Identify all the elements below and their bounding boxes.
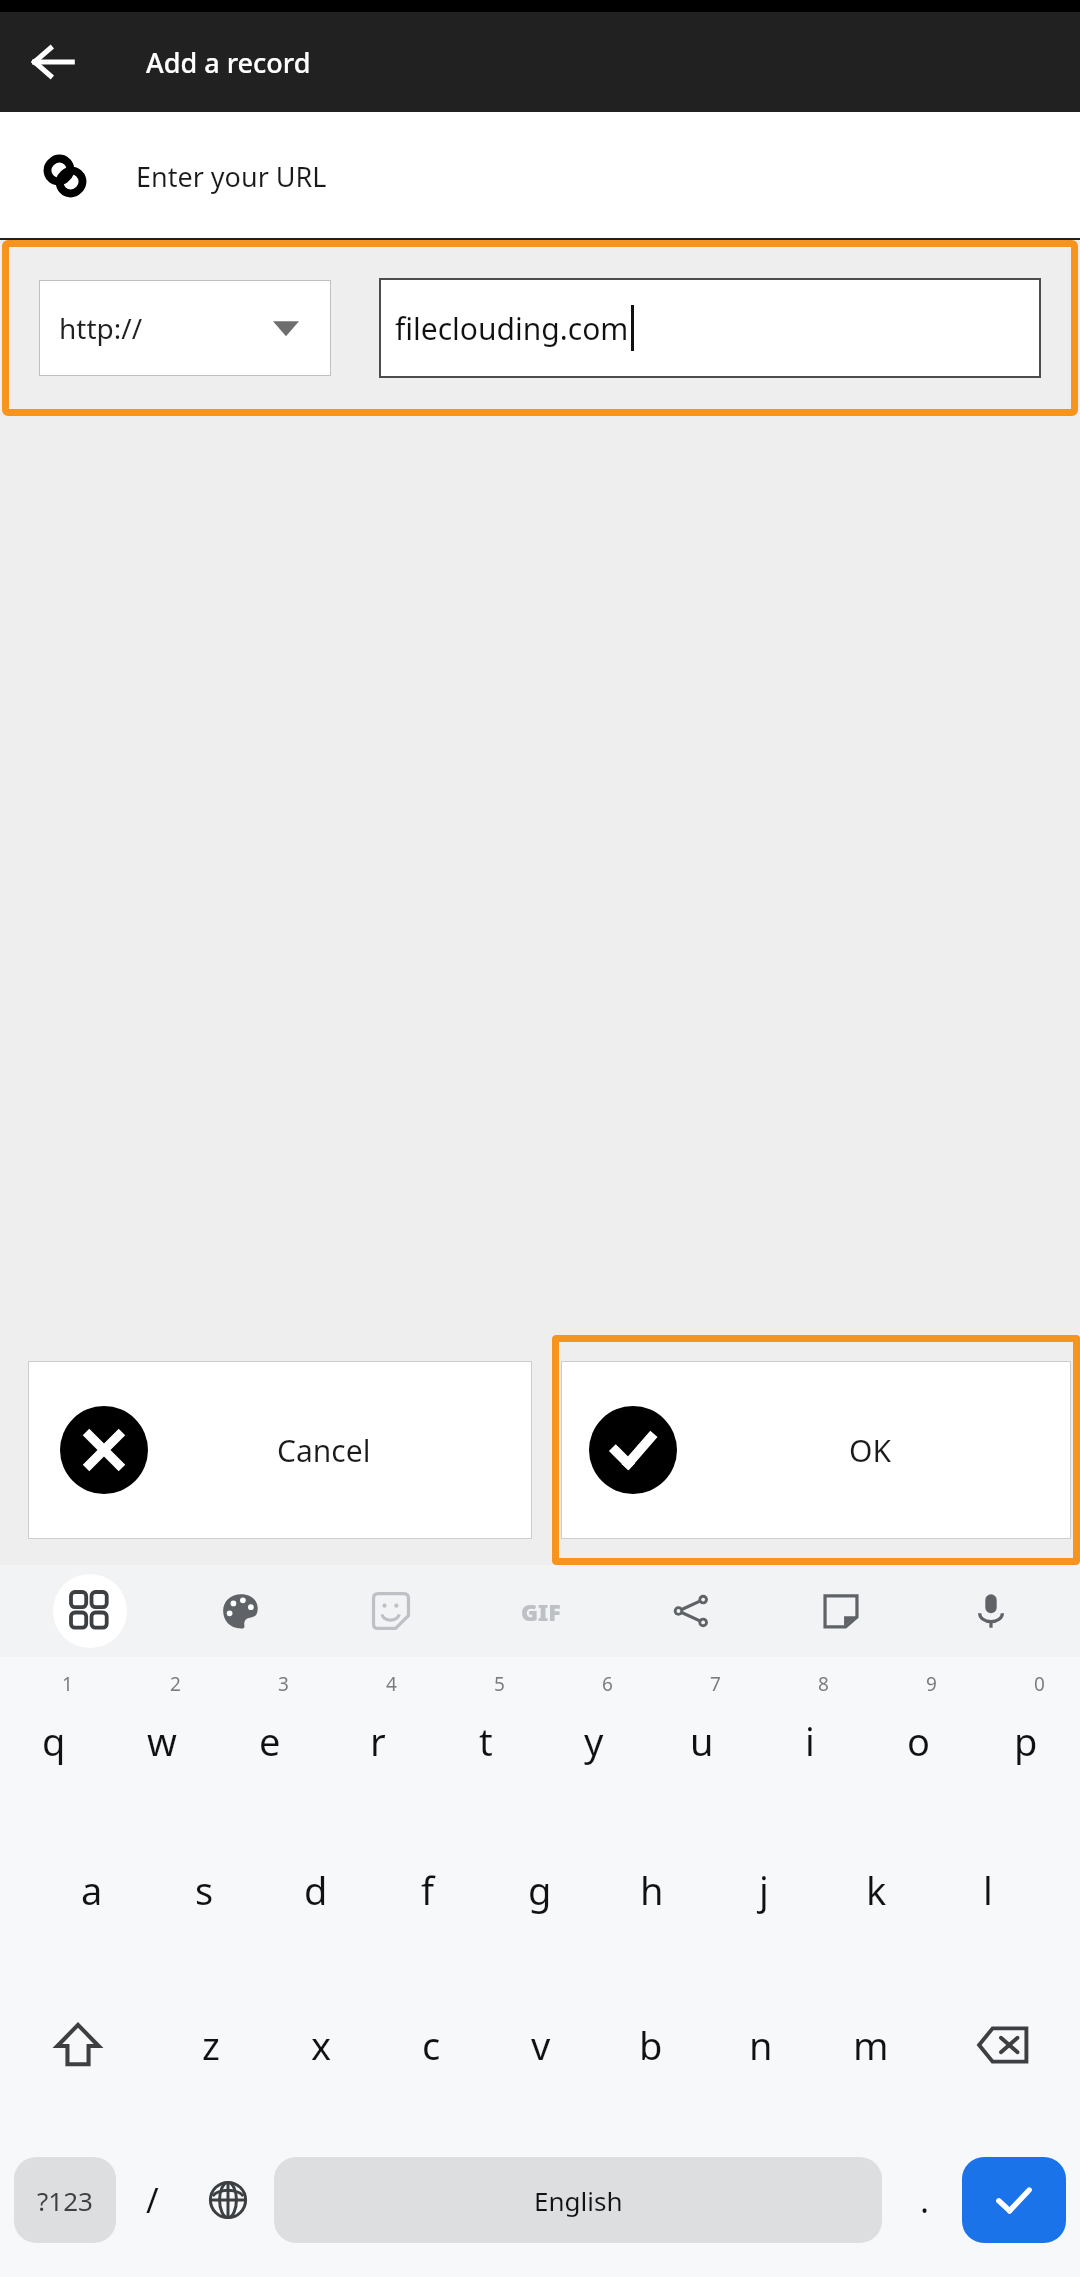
- button[interactable]: Keyboard modes: [14, 1565, 165, 1657]
- staticText: y: [584, 1715, 604, 1767]
- button[interactable]: Voice input: [916, 1565, 1066, 1657]
- button[interactable]: m: [816, 1967, 926, 2122]
- button[interactable]: 9: [864, 1657, 972, 1812]
- button[interactable]: n: [706, 1967, 816, 2122]
- staticText: English: [534, 2183, 623, 2218]
- button[interactable]: http://: [39, 280, 331, 376]
- button[interactable]: Cancel: [28, 1361, 532, 1539]
- button[interactable]: a: [36, 1812, 148, 1967]
- staticText: 8: [818, 1671, 829, 1697]
- button[interactable]: Backspace: [926, 1967, 1080, 2122]
- staticText: z: [202, 2019, 220, 2071]
- button[interactable]: /: [116, 2122, 188, 2277]
- staticText: u: [690, 1715, 714, 1767]
- staticText: Enter your URL: [136, 158, 327, 195]
- staticText: p: [1014, 1715, 1038, 1767]
- staticText: Add a record: [146, 44, 311, 81]
- button[interactable]: .: [888, 2122, 962, 2277]
- button[interactable]: OK: [561, 1361, 1071, 1539]
- button[interactable]: v: [486, 1967, 596, 2122]
- button[interactable]: z: [155, 1967, 266, 2122]
- staticText: 6: [602, 1671, 613, 1697]
- staticText: x: [311, 2019, 332, 2071]
- button[interactable]: GIF: [466, 1565, 616, 1657]
- staticText: c: [422, 2019, 441, 2071]
- button[interactable]: j: [708, 1812, 820, 1967]
- staticText: fileclouding.com: [395, 308, 629, 349]
- button[interactable]: 7: [648, 1657, 756, 1812]
- button[interactable]: Themes: [165, 1565, 316, 1657]
- staticText: 1: [62, 1671, 73, 1697]
- staticText: m: [853, 2019, 889, 2071]
- button[interactable]: 1: [0, 1657, 108, 1812]
- staticText: r: [370, 1715, 386, 1767]
- staticText: d: [304, 1864, 328, 1916]
- button[interactable]: Back: [22, 31, 84, 93]
- button[interactable]: l: [932, 1812, 1044, 1967]
- button[interactable]: s: [148, 1812, 260, 1967]
- button[interactable]: fileclouding.com: [379, 278, 1041, 378]
- button[interactable]: 4: [324, 1657, 432, 1812]
- button[interactable]: c: [376, 1967, 486, 2122]
- button[interactable]: Share: [616, 1565, 766, 1657]
- button[interactable]: Change language: [188, 2122, 268, 2277]
- staticText: GIF: [521, 1596, 561, 1627]
- staticText: v: [531, 2019, 551, 2071]
- staticText: 0: [1034, 1671, 1045, 1697]
- staticText: j: [759, 1864, 769, 1916]
- button[interactable]: h: [596, 1812, 708, 1967]
- staticText: ?123: [37, 2183, 93, 2218]
- staticText: 3: [278, 1671, 289, 1697]
- staticText: e: [259, 1715, 281, 1767]
- staticText: q: [42, 1715, 66, 1767]
- button[interactable]: ?123: [14, 2157, 116, 2243]
- staticText: n: [749, 2019, 773, 2071]
- staticText: g: [528, 1864, 552, 1916]
- staticText: i: [805, 1715, 815, 1767]
- staticText: h: [640, 1864, 664, 1916]
- staticText: /: [146, 2177, 159, 2223]
- button[interactable]: English: [274, 2157, 882, 2243]
- staticText: l: [983, 1864, 993, 1916]
- button[interactable]: d: [260, 1812, 372, 1967]
- staticText: Cancel: [277, 1430, 371, 1471]
- button[interactable]: 2: [108, 1657, 216, 1812]
- staticText: http://: [59, 309, 143, 347]
- staticText: 2: [170, 1671, 181, 1697]
- button[interactable]: b: [596, 1967, 706, 2122]
- staticText: a: [81, 1864, 103, 1916]
- staticText: k: [866, 1864, 887, 1916]
- staticText: .: [920, 2177, 930, 2223]
- staticText: 4: [386, 1671, 397, 1697]
- button[interactable]: x: [266, 1967, 376, 2122]
- staticText: t: [479, 1715, 493, 1767]
- button[interactable]: Enter: [962, 2157, 1066, 2243]
- button[interactable]: 5: [432, 1657, 540, 1812]
- button[interactable]: Clipboard: [766, 1565, 916, 1657]
- button[interactable]: 6: [540, 1657, 648, 1812]
- button[interactable]: 3: [216, 1657, 324, 1812]
- button[interactable]: g: [484, 1812, 596, 1967]
- staticText: b: [639, 2019, 663, 2071]
- button[interactable]: 8: [756, 1657, 864, 1812]
- button[interactable]: 0: [972, 1657, 1080, 1812]
- staticText: OK: [849, 1430, 891, 1471]
- button[interactable]: f: [372, 1812, 484, 1967]
- button[interactable]: k: [820, 1812, 932, 1967]
- staticText: o: [907, 1715, 930, 1767]
- staticText: f: [421, 1864, 435, 1916]
- staticText: s: [195, 1864, 214, 1916]
- button[interactable]: Shift: [0, 1967, 155, 2122]
- staticText: 7: [710, 1671, 721, 1697]
- staticText: 5: [494, 1671, 505, 1697]
- button[interactable]: Stickers: [316, 1565, 466, 1657]
- staticText: w: [147, 1715, 177, 1767]
- staticText: 9: [926, 1671, 937, 1697]
